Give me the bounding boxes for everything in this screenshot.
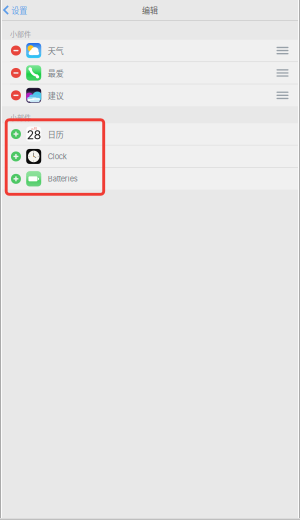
staticText: Batteries: [48, 174, 78, 183]
staticText: 天气: [48, 45, 64, 56]
staticText: 小部件: [10, 112, 31, 122]
staticText: 建议: [48, 90, 64, 101]
staticText: Clock: [48, 152, 67, 161]
staticText: 小部件: [10, 29, 31, 39]
button[interactable]: Batteries: [0, 168, 300, 190]
staticText: 三月: [31, 126, 37, 130]
staticText: 编辑: [142, 4, 158, 16]
button[interactable]: 建议: [0, 84, 300, 106]
staticText: 28: [27, 128, 41, 142]
staticText: 设置: [11, 4, 27, 16]
button[interactable]: 最爱: [0, 62, 300, 84]
button[interactable]: Clock: [0, 146, 300, 167]
button[interactable]: 设置: [0, 0, 31, 20]
button[interactable]: 天气: [0, 40, 300, 61]
staticText: 日历: [48, 128, 64, 140]
staticText: 最爱: [48, 67, 64, 79]
button[interactable]: 三月: [0, 123, 300, 145]
